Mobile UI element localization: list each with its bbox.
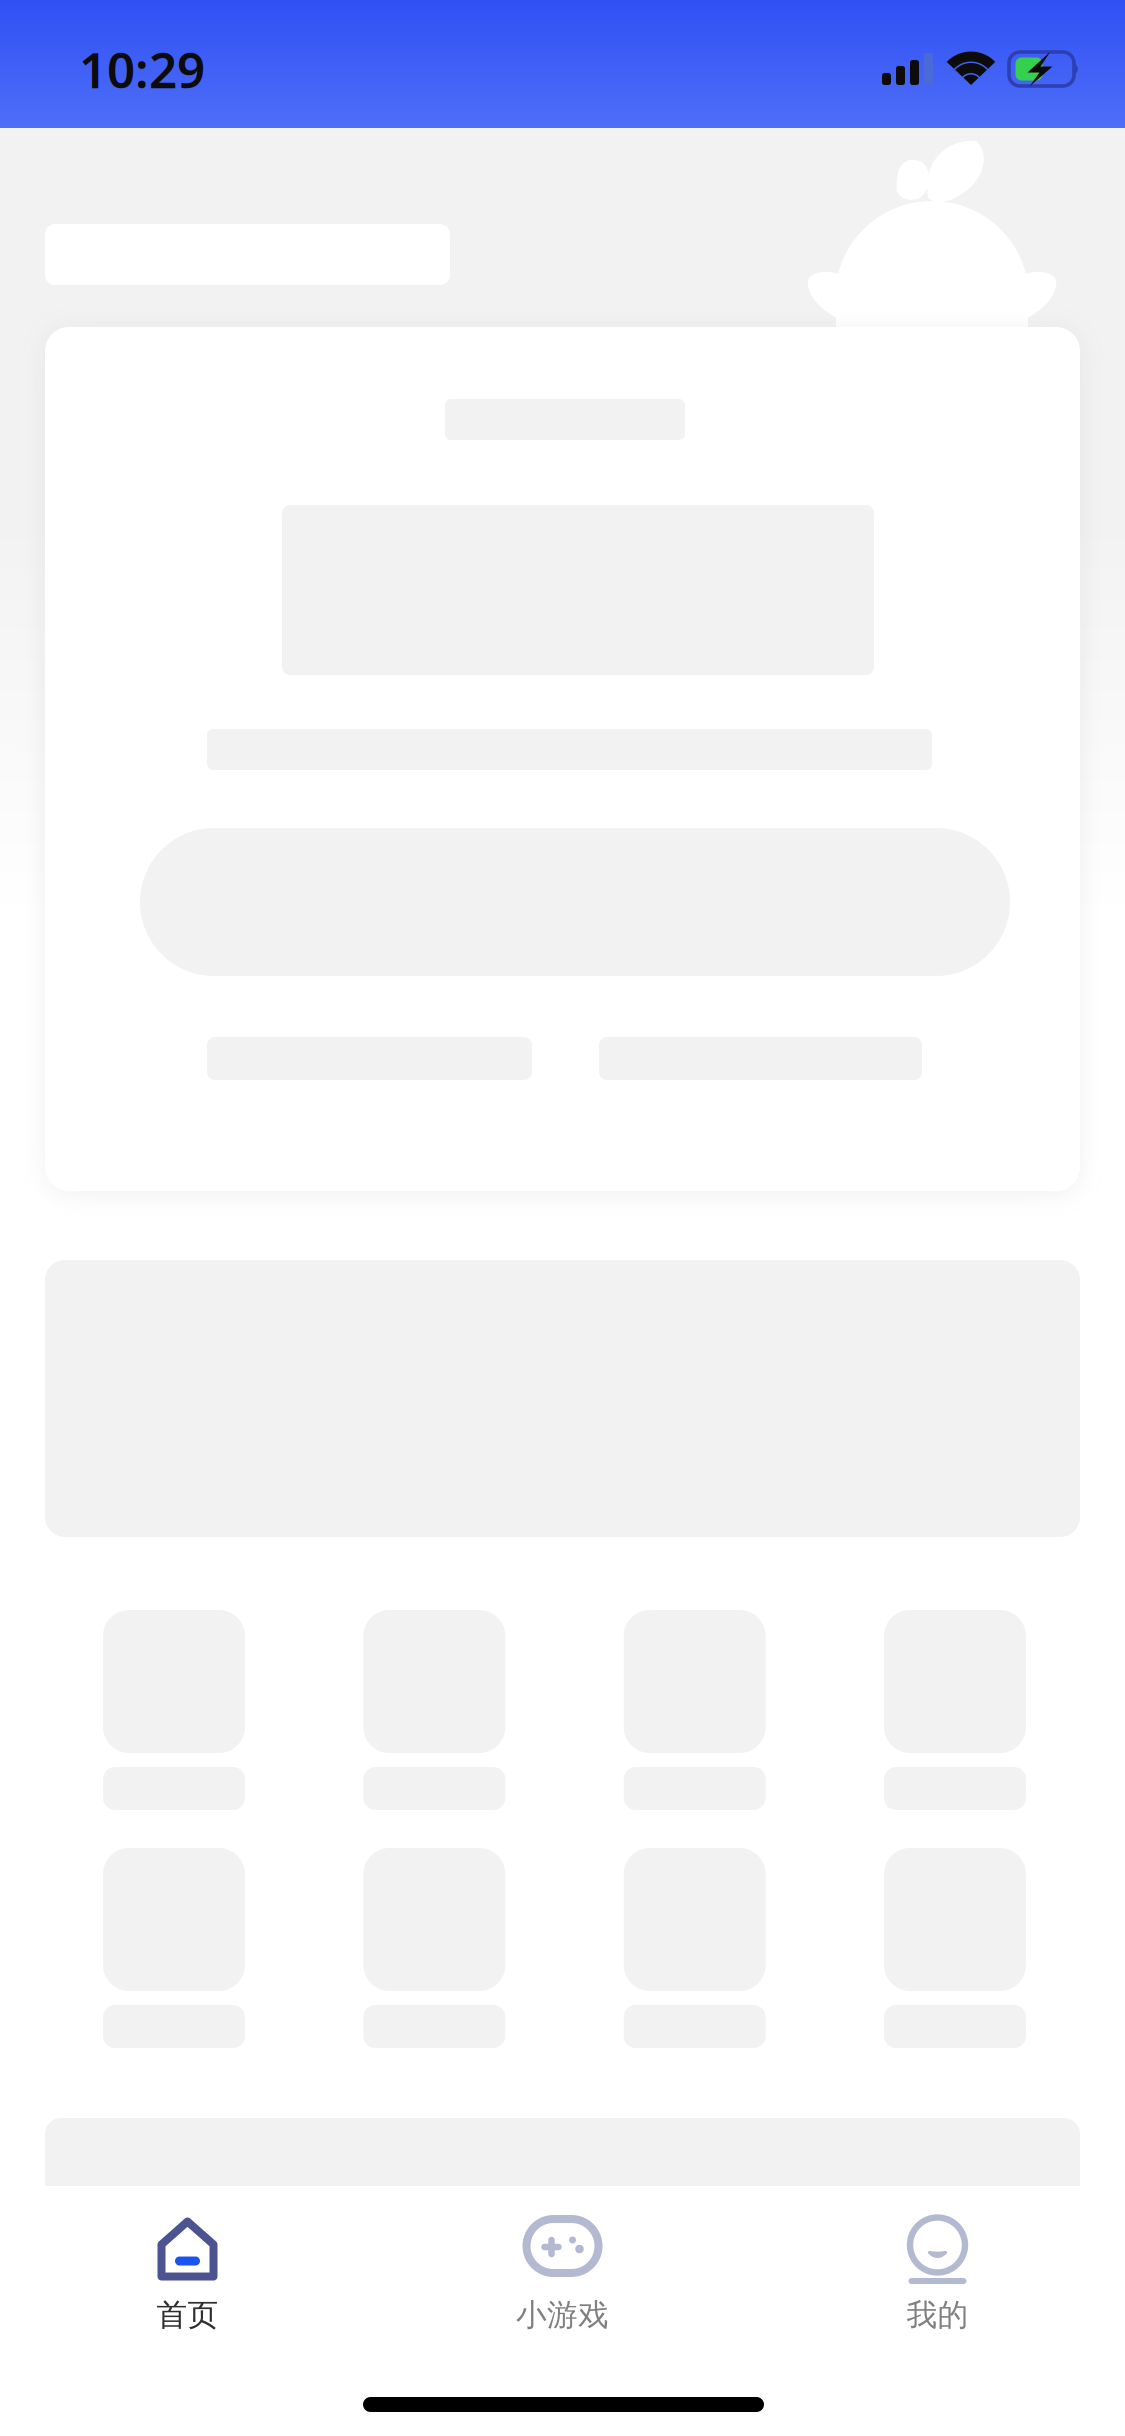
button[interactable]: Shortcut, loading (624, 1848, 766, 2048)
staticText: 小游戏 (516, 2296, 609, 2334)
staticText: 10:29 (79, 36, 205, 102)
button[interactable]: Shortcut, loading (103, 1610, 245, 1810)
button[interactable]: Featured card, loading (45, 327, 1080, 1191)
button[interactable]: Shortcut, loading (363, 1610, 505, 1810)
button[interactable]: Shortcut, loading (103, 1848, 245, 2048)
button[interactable]: 首页 (0, 2186, 375, 2346)
button[interactable]: Shortcut, loading (884, 1610, 1026, 1810)
button[interactable]: Shortcut, loading (624, 1610, 766, 1810)
button[interactable]: Shortcut, loading (363, 1848, 505, 2048)
staticText: 我的 (906, 2296, 968, 2334)
staticText: 首页 (156, 2296, 218, 2334)
button[interactable]: 小游戏 (375, 2186, 750, 2346)
button[interactable]: Shortcut, loading (884, 1848, 1026, 2048)
button[interactable]: 我的 (750, 2186, 1125, 2346)
